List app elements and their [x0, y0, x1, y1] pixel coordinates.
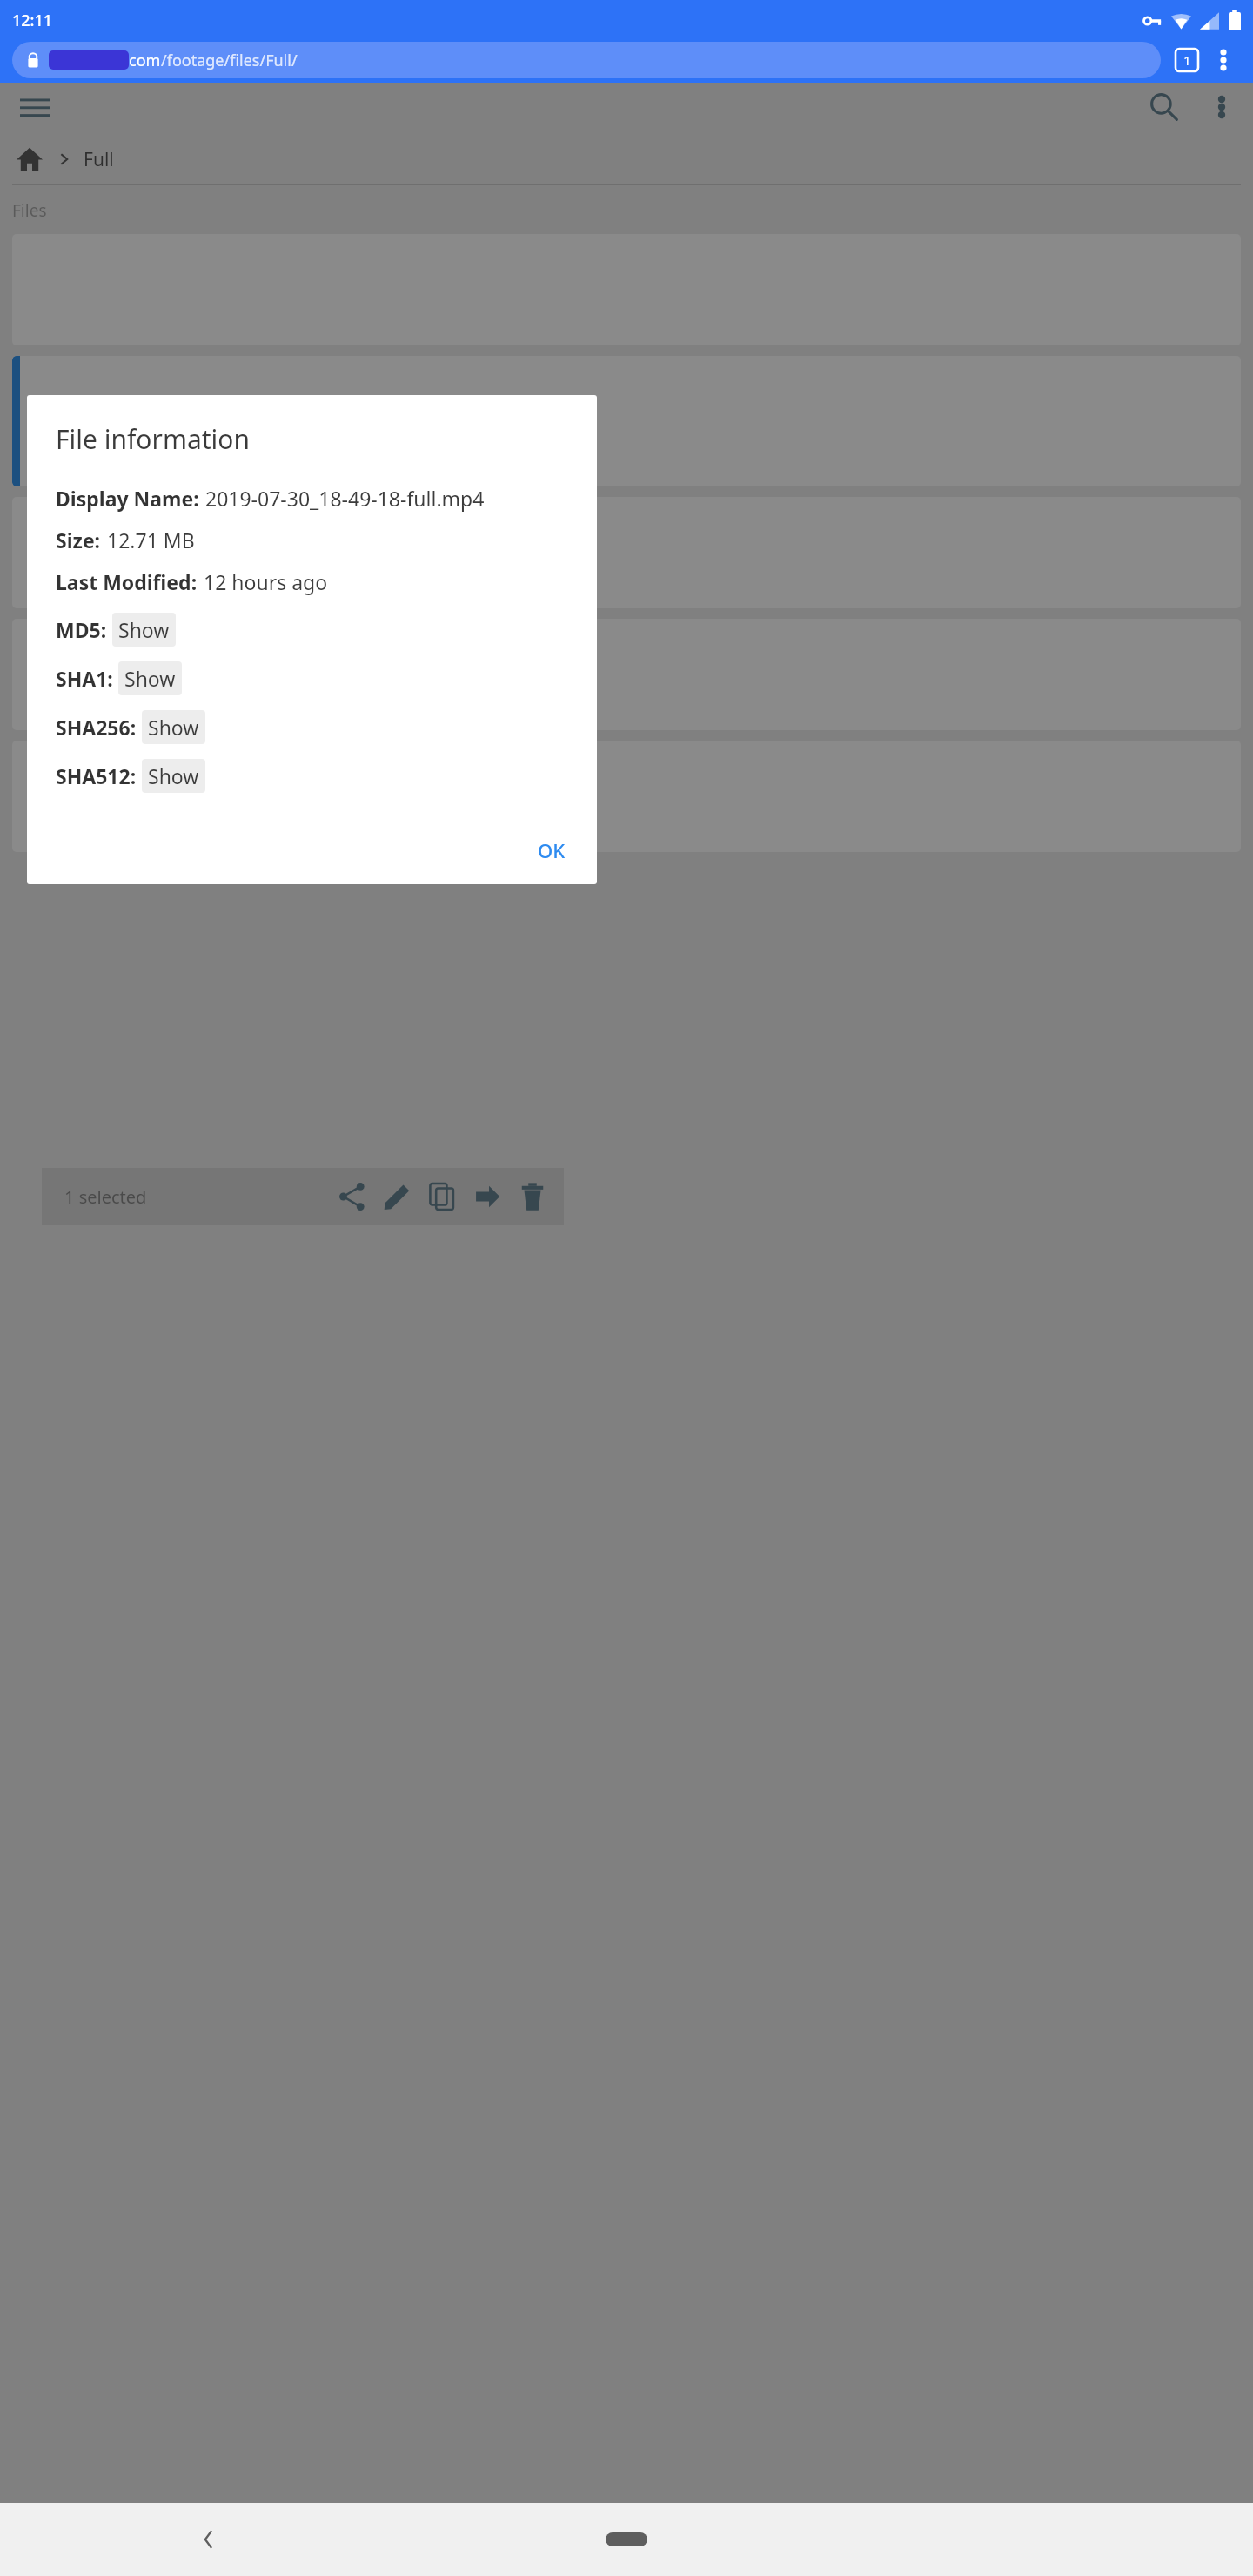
staticText: 1 selected	[64, 1185, 147, 1209]
button[interactable]: Browser menu	[1206, 43, 1241, 77]
staticText: Display Name:	[56, 485, 199, 512]
staticText: File information	[56, 421, 251, 457]
staticText: Files	[12, 199, 47, 222]
button[interactable]: Rename	[374, 1174, 419, 1219]
staticText: Show	[124, 665, 176, 692]
staticText: Last Modified:	[56, 568, 198, 595]
staticText: 12:11	[12, 10, 53, 31]
button[interactable]: com	[12, 42, 1161, 78]
staticText: 12.71 MB	[107, 527, 195, 553]
button[interactable]: 2019-07-30_18-46-17-full.mp4	[12, 619, 1241, 730]
button[interactable]: 2 days ago	[12, 741, 1241, 852]
staticText: Full	[84, 147, 114, 172]
button[interactable]: More options	[1203, 88, 1241, 126]
button[interactable]: Share	[329, 1174, 374, 1219]
staticText: 12 hours ago	[204, 568, 328, 595]
staticText: 2 days ago	[94, 688, 182, 711]
staticText: 2019-07-30_18-46-17-full.mp4	[94, 638, 365, 664]
button[interactable]: Menu	[16, 88, 54, 126]
staticText: Show	[148, 714, 199, 741]
button[interactable]: Show	[112, 613, 176, 647]
staticText: com	[129, 50, 161, 71]
button[interactable]: Home	[418, 2503, 835, 2576]
staticText: Size:	[56, 527, 101, 553]
staticText: 2019-07-30_18-49-18-full.mp4	[205, 485, 485, 512]
staticText: MD5:	[56, 616, 107, 643]
button[interactable]: Move	[465, 1174, 510, 1219]
button[interactable]: Delete	[510, 1174, 555, 1219]
staticText: 1	[1183, 51, 1191, 69]
button[interactable]	[12, 356, 1241, 486]
button[interactable]: Show	[142, 710, 205, 744]
staticText: 7.83 MB	[94, 664, 161, 688]
staticText: SHA256:	[56, 714, 137, 741]
staticText: Show	[148, 762, 199, 789]
staticText: OK	[538, 837, 566, 863]
button[interactable]: Show	[118, 661, 182, 695]
button[interactable]: OK	[524, 830, 580, 870]
button[interactable]: Search	[1143, 86, 1185, 128]
staticText: Show	[118, 616, 170, 643]
staticText: SHA1:	[56, 665, 113, 692]
staticText: /footage/files/Full/	[161, 50, 298, 71]
staticText: SHA512:	[56, 762, 137, 789]
button[interactable]: Home	[12, 142, 47, 177]
button[interactable]	[12, 497, 1241, 608]
button[interactable]: Tabs	[1168, 41, 1206, 79]
button[interactable]: Show	[142, 759, 205, 793]
button[interactable]: Copy	[419, 1174, 465, 1219]
button[interactable]: Back	[0, 2503, 418, 2576]
staticText: 2 days ago	[94, 785, 182, 808]
